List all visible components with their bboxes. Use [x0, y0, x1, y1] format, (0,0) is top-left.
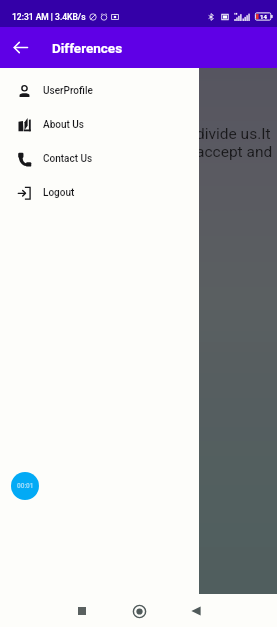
button[interactable]: Logout	[0, 176, 199, 210]
button[interactable]: 00:01	[11, 472, 39, 500]
button[interactable]: Home	[125, 597, 153, 625]
staticText: Differences	[52, 40, 123, 56]
button[interactable]: Back	[182, 597, 210, 625]
staticText: divide us.It	[196, 125, 271, 143]
staticText: UserProfile	[43, 85, 93, 97]
staticText: 14	[260, 13, 267, 20]
button[interactable]: About Us	[0, 108, 199, 142]
staticText: Contact Us	[43, 153, 93, 165]
staticText: About Us	[43, 119, 84, 131]
staticText: 12:31 AM | 3.4KB/s	[12, 12, 86, 22]
staticText: Logout	[43, 187, 75, 199]
staticText: 00:01	[17, 482, 34, 490]
button[interactable]: UserProfile	[0, 74, 199, 108]
staticText: accept and	[196, 143, 273, 161]
button[interactable]: Back	[0, 27, 41, 68]
button[interactable]: Recents	[68, 597, 96, 625]
button[interactable]: Contact Us	[0, 142, 199, 176]
